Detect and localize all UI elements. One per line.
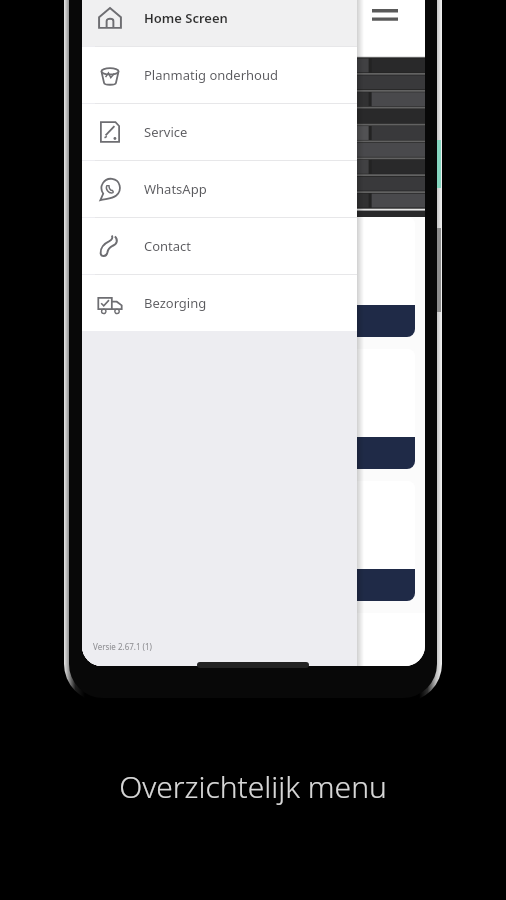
staticText: Home Screen — [144, 9, 228, 27]
staticText: Versie 2.67.1 (1) — [93, 641, 152, 652]
staticText: WhatsApp — [144, 180, 207, 198]
button[interactable]: Service — [82, 104, 357, 160]
staticText: Overzichtelijk menu — [0, 766, 506, 807]
staticText: Planmatig onderhoud — [144, 66, 278, 84]
button[interactable]: Planmatig onderhoud — [82, 47, 357, 103]
staticText: Service — [144, 123, 188, 141]
button[interactable] — [92, 481, 415, 601]
button[interactable] — [92, 349, 415, 469]
button[interactable]: WhatsApp — [82, 161, 357, 217]
button[interactable]: Open menu — [372, 3, 398, 29]
button[interactable]: Bezorging — [82, 275, 357, 331]
button[interactable] — [92, 217, 415, 337]
button[interactable]: Contact — [82, 218, 357, 274]
staticText: Bezorging — [144, 294, 207, 312]
button[interactable]: Home Screen — [82, 0, 357, 46]
staticText: Contact — [144, 237, 192, 255]
